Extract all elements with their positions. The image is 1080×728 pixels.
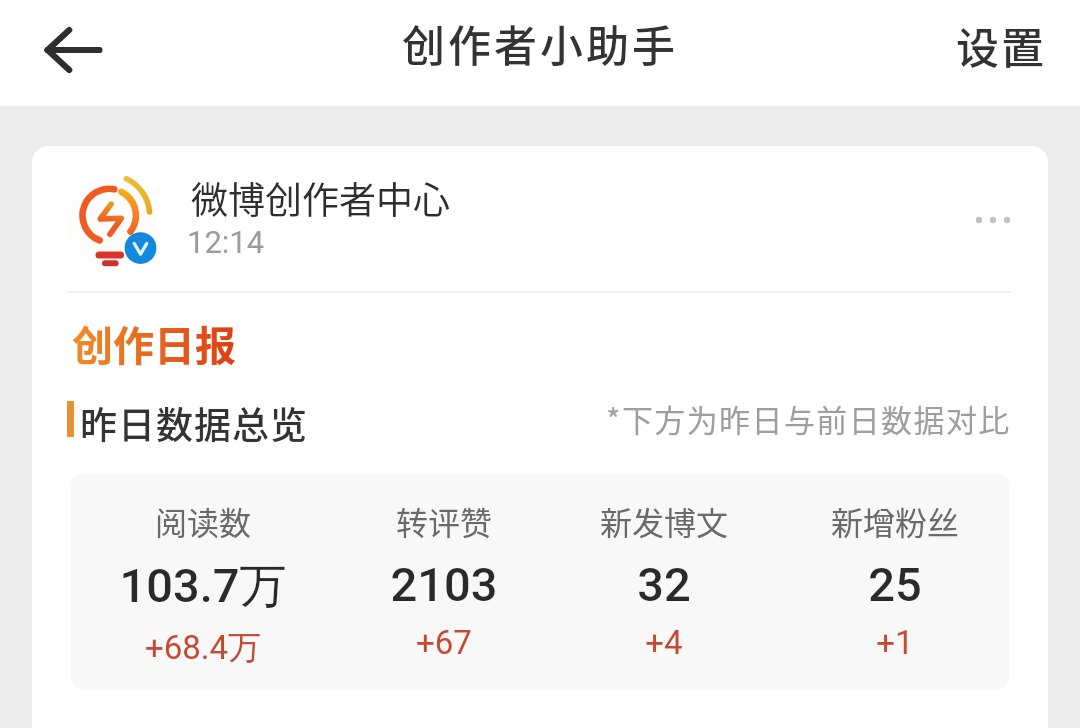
staticText: +1 [785, 623, 1005, 662]
staticText: *下方为昨日与前日数据对比 [606, 396, 1011, 441]
staticText: +67 [334, 623, 554, 662]
button[interactable]: 创作者小助手 [402, 12, 678, 74]
staticText: 25 [785, 557, 1005, 612]
button[interactable]: 阅读数 [71, 473, 1009, 690]
staticText: 阅读数 [93, 498, 313, 544]
staticText: 新增粉丝 [785, 498, 1005, 544]
staticText: +68.4万 [93, 627, 313, 669]
staticText: 103.7万 [93, 557, 313, 616]
button[interactable]: 微博创作者中心 [32, 146, 888, 286]
staticText: 昨日数据总览 [80, 396, 308, 450]
staticText: 32 [554, 557, 774, 612]
staticText: 创作者小助手 [402, 12, 678, 74]
staticText: 设置 [956, 14, 1046, 76]
staticText: 转评赞 [334, 498, 554, 544]
button[interactable]: Back [34, 11, 112, 89]
staticText: 2103 [334, 557, 554, 612]
staticText: 12:14 [187, 224, 265, 260]
staticText: 新发博文 [554, 498, 774, 544]
button[interactable]: More options [953, 180, 1033, 260]
staticText: 微博创作者中心 [191, 171, 450, 225]
staticText: +4 [554, 623, 774, 662]
staticText: 创作日报 [72, 313, 236, 372]
button[interactable]: 设置 [934, 0, 1080, 94]
